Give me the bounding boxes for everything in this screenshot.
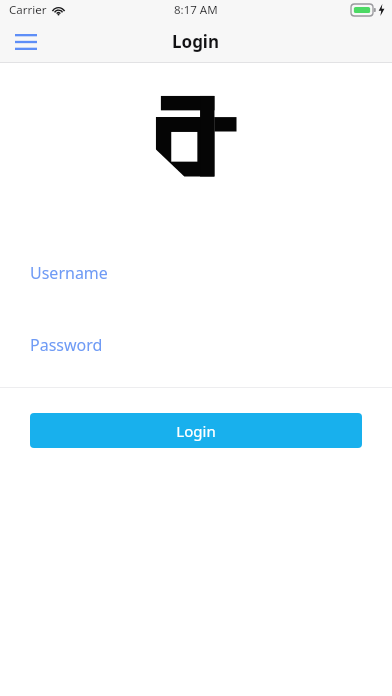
staticText: Password [30,334,103,356]
button[interactable]: Menu [8,25,44,59]
staticText: Carrier [9,2,47,18]
staticText: Username [30,262,108,284]
button[interactable]: Username [0,256,392,290]
button[interactable]: Password [0,328,392,362]
staticText: Login [176,421,216,441]
button[interactable]: Login [30,413,362,448]
staticText: Login [172,30,220,53]
staticText: 8:17 AM [174,2,218,18]
